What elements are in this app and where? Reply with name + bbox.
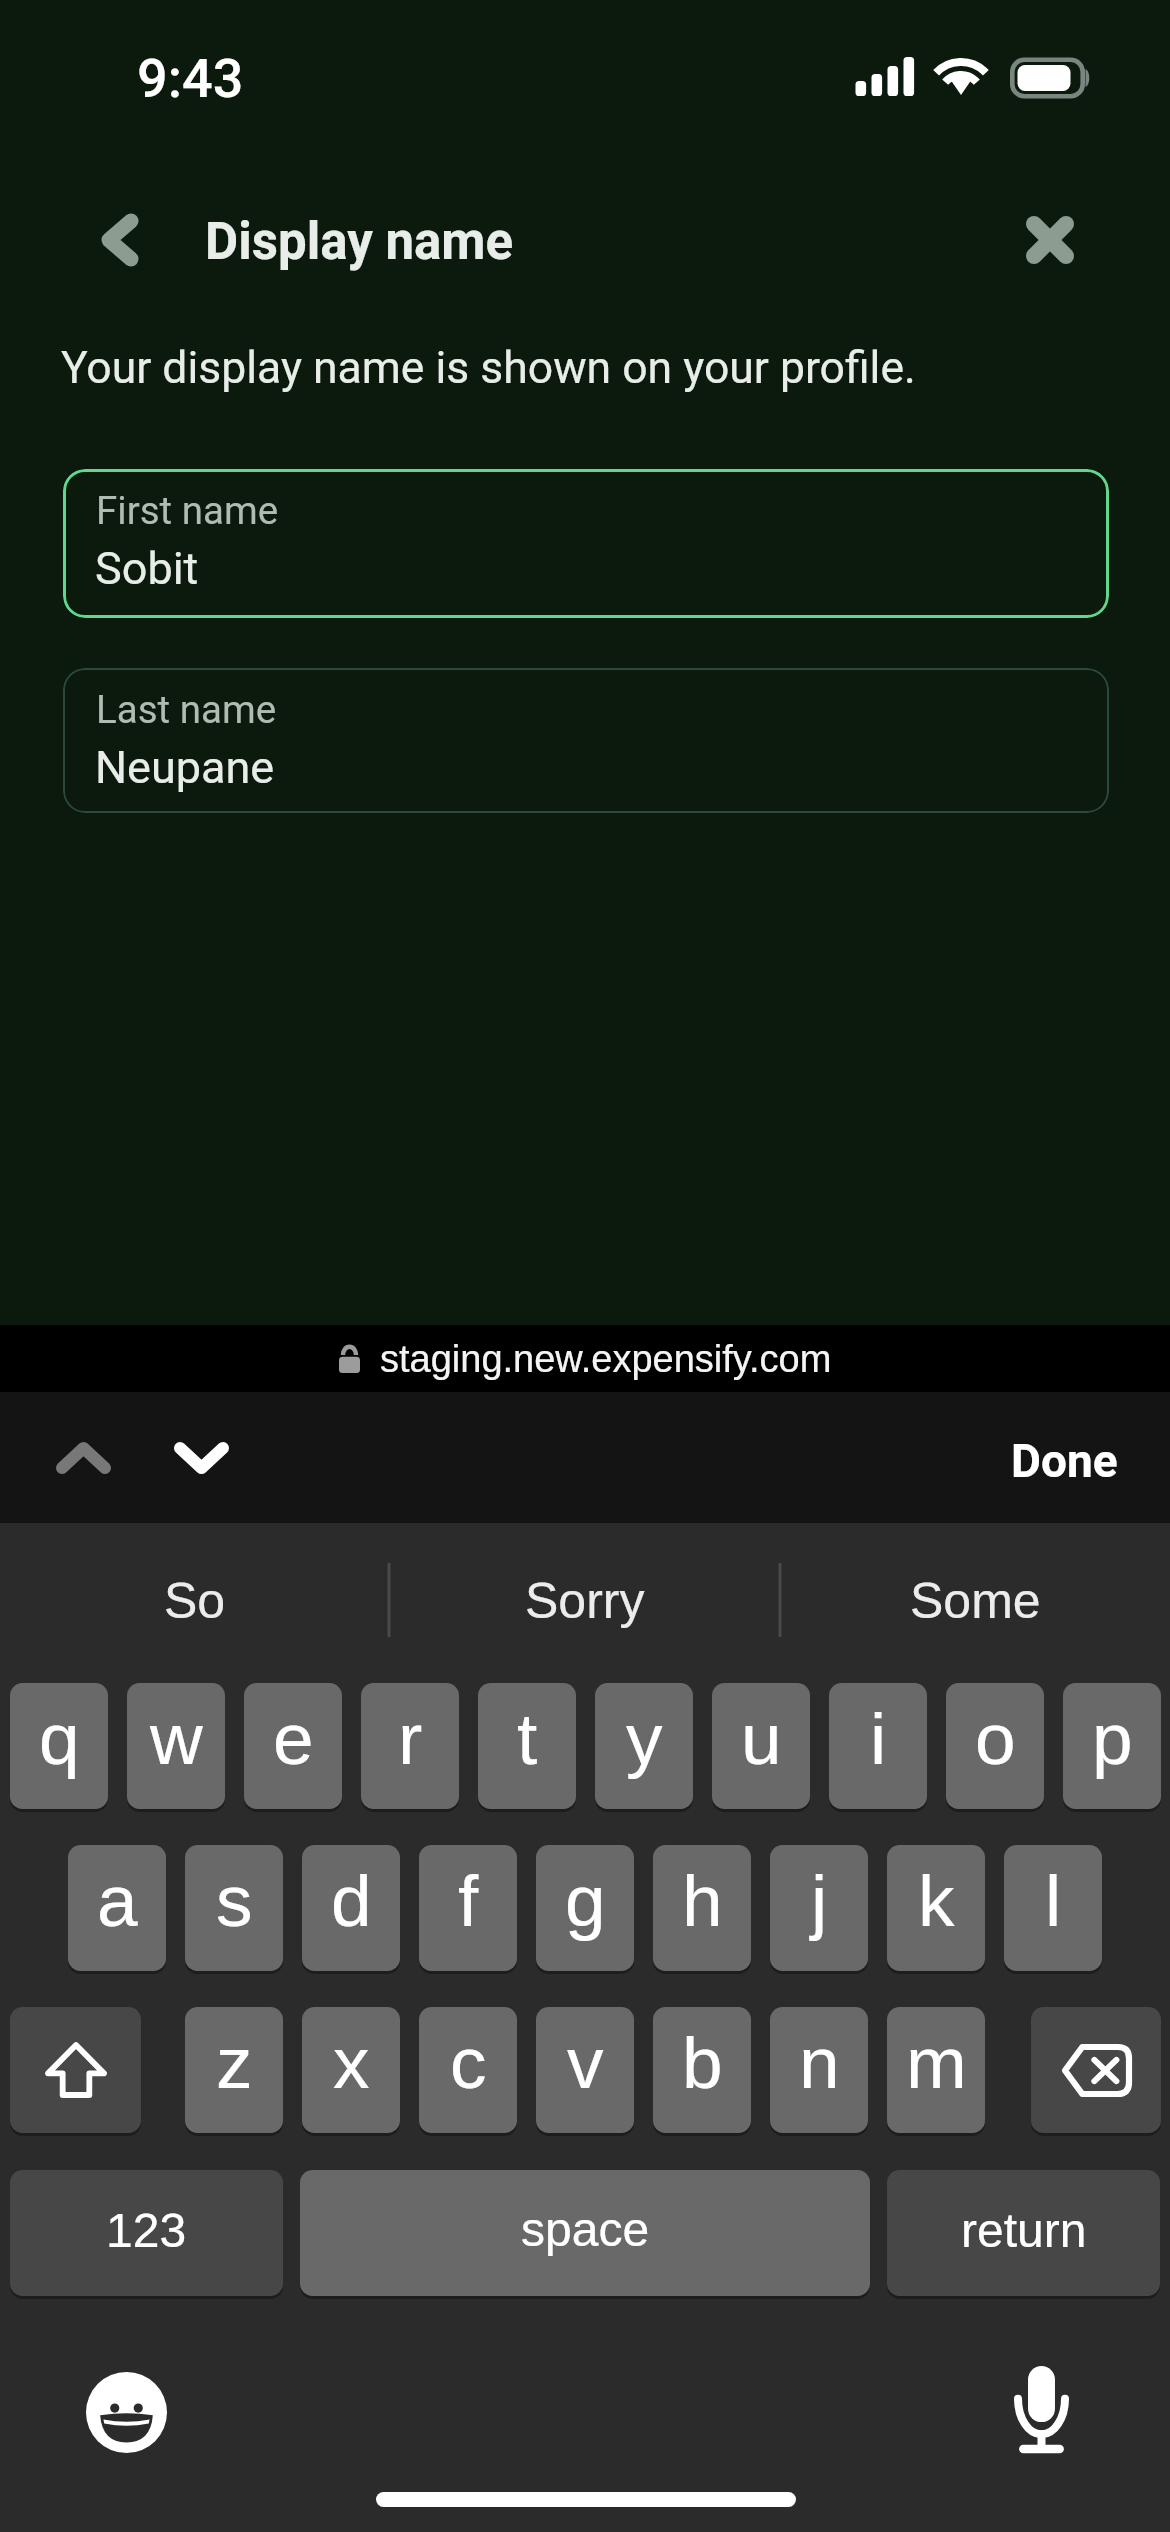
staticText: Display name	[205, 212, 514, 272]
button[interactable]: c	[419, 2007, 517, 2133]
staticText: w	[150, 1698, 203, 1780]
button[interactable]: t	[478, 1683, 576, 1809]
staticText: i	[870, 1698, 887, 1780]
staticText: First name	[96, 488, 279, 533]
button[interactable]: Done	[987, 1416, 1142, 1506]
button[interactable]: Close	[995, 185, 1105, 295]
staticText: o	[975, 1698, 1016, 1780]
staticText: g	[565, 1860, 606, 1942]
button[interactable]: Next field	[154, 1413, 249, 1503]
staticText: y	[626, 1698, 663, 1780]
staticText: k	[918, 1860, 955, 1942]
button[interactable]: m	[887, 2007, 985, 2133]
staticText: u	[741, 1698, 782, 1780]
staticText: d	[331, 1860, 372, 1942]
staticText: l	[1045, 1860, 1062, 1942]
staticText: p	[1092, 1698, 1133, 1780]
button[interactable]: u	[712, 1683, 810, 1809]
button[interactable]: space	[300, 2170, 870, 2296]
button[interactable]: Sorry	[390, 1571, 780, 1631]
button[interactable]: return	[887, 2170, 1160, 2296]
button[interactable]: h	[653, 1845, 751, 1971]
button[interactable]: So	[0, 1571, 390, 1631]
button[interactable]: r	[361, 1683, 459, 1809]
staticText: r	[398, 1698, 423, 1780]
button[interactable]: j	[770, 1845, 868, 1971]
staticText: space	[521, 2203, 650, 2257]
staticText: return	[961, 2204, 1087, 2258]
button[interactable]: Backspace	[1031, 2007, 1161, 2133]
button[interactable]: Emoji	[86, 2372, 167, 2453]
staticText: f	[458, 1860, 479, 1942]
staticText: v	[567, 2022, 604, 2104]
button[interactable]: Back	[72, 185, 167, 295]
staticText: e	[273, 1698, 314, 1780]
staticText: s	[216, 1860, 253, 1942]
button[interactable]: x	[302, 2007, 400, 2133]
staticText: h	[682, 1860, 723, 1942]
staticText: c	[450, 2022, 487, 2104]
button[interactable]: y	[595, 1683, 693, 1809]
button[interactable]: s	[185, 1845, 283, 1971]
button[interactable]: 123	[10, 2170, 283, 2296]
staticText: staging.new.expensify.com	[380, 1338, 832, 1380]
button[interactable]: z	[185, 2007, 283, 2133]
button[interactable]: Last name	[63, 668, 1109, 813]
staticText: Last name	[96, 687, 277, 732]
button[interactable]: Dictation	[1014, 2366, 1069, 2453]
button[interactable]: i	[829, 1683, 927, 1809]
staticText: Sorry	[525, 1573, 645, 1629]
button[interactable]: Some	[780, 1571, 1170, 1631]
staticText: Some	[910, 1573, 1041, 1629]
button[interactable]: l	[1004, 1845, 1102, 1971]
staticText: a	[97, 1860, 138, 1942]
staticText: Neupane	[95, 741, 275, 794]
button[interactable]: q	[10, 1683, 108, 1809]
staticText: Your display name is shown on your profi…	[61, 342, 916, 394]
staticText: Done	[1011, 1434, 1118, 1488]
button[interactable]: k	[887, 1845, 985, 1971]
button[interactable]: Shift	[10, 2007, 141, 2133]
staticText: t	[517, 1698, 538, 1780]
staticText: Sobit	[95, 542, 199, 595]
button[interactable]: w	[127, 1683, 225, 1809]
staticText: b	[682, 2022, 723, 2104]
staticText: q	[39, 1698, 80, 1780]
button[interactable]: p	[1063, 1683, 1161, 1809]
button[interactable]: n	[770, 2007, 868, 2133]
button[interactable]: o	[946, 1683, 1044, 1809]
staticText: x	[333, 2022, 370, 2104]
button[interactable]: d	[302, 1845, 400, 1971]
button[interactable]: g	[536, 1845, 634, 1971]
staticText: So	[164, 1573, 226, 1629]
button[interactable]: First name	[63, 469, 1109, 618]
staticText: j	[811, 1860, 828, 1942]
staticText: m	[906, 2022, 967, 2104]
staticText: 9:43	[137, 47, 244, 110]
staticText: 123	[106, 2204, 187, 2258]
staticText: z	[216, 2022, 253, 2104]
button[interactable]: f	[419, 1845, 517, 1971]
button[interactable]: Previous field	[36, 1413, 131, 1503]
button[interactable]: b	[653, 2007, 751, 2133]
button[interactable]: v	[536, 2007, 634, 2133]
button[interactable]: e	[244, 1683, 342, 1809]
button[interactable]: a	[68, 1845, 166, 1971]
staticText: n	[799, 2022, 840, 2104]
